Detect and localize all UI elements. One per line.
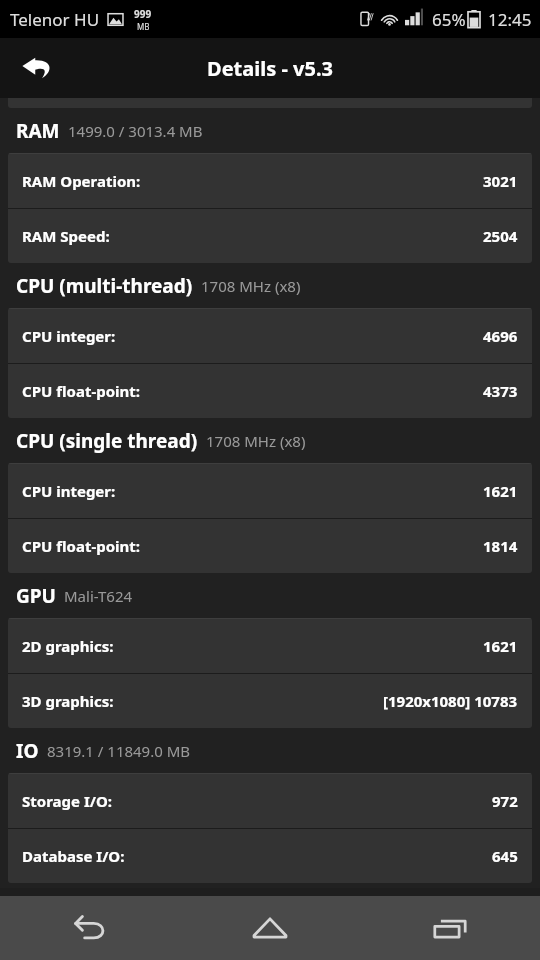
button[interactable]: Back <box>0 896 180 960</box>
staticText: Database I/O: <box>22 846 125 866</box>
staticText: CPU float-point: <box>22 536 141 556</box>
staticText: Mali-T624 <box>64 586 133 606</box>
staticText: Storage I/O: <box>22 791 113 811</box>
button[interactable]: CPU integer: <box>8 464 532 518</box>
button[interactable]: Database I/O: <box>8 829 532 883</box>
button[interactable]: CPU float-point: <box>8 364 532 418</box>
button[interactable]: RAM Speed: <box>8 209 532 263</box>
button[interactable]: 3D graphics: <box>8 674 532 728</box>
staticText: RAM <box>16 118 60 144</box>
staticText: [1920x1080] 10783 <box>383 691 518 711</box>
staticText: 2D graphics: <box>22 636 114 656</box>
button[interactable]: RAM Operation: <box>8 154 532 208</box>
staticText: 1814 <box>483 536 518 556</box>
button[interactable]: CPU integer: <box>8 309 532 363</box>
button[interactable]: 2D graphics: <box>8 619 532 673</box>
staticText: Details - v5.3 <box>207 55 333 82</box>
staticText: CPU (single thread) <box>16 428 198 454</box>
staticText: 1708 MHz (x8) <box>201 276 301 296</box>
staticText: 12:45 <box>488 8 532 31</box>
staticText: 999 <box>134 7 152 21</box>
staticText: IO <box>16 738 39 764</box>
staticText: CPU integer: <box>22 481 116 501</box>
staticText: 1499.0 / 3013.4 MB <box>68 121 203 141</box>
staticText: MB <box>137 21 150 32</box>
staticText: 1621 <box>483 636 518 656</box>
button[interactable]: Recent apps <box>360 896 540 960</box>
staticText: CPU integer: <box>22 326 116 346</box>
staticText: 3D graphics: <box>22 691 114 711</box>
staticText: GPU <box>16 583 56 609</box>
staticText: Telenor HU <box>10 8 100 31</box>
staticText: RAM Operation: <box>22 171 141 191</box>
button[interactable]: Home <box>180 896 360 960</box>
staticText: 645 <box>492 846 518 866</box>
staticText: RAM Speed: <box>22 226 110 246</box>
staticText: 972 <box>492 791 518 811</box>
button[interactable]: CPU float-point: <box>8 519 532 573</box>
button[interactable]: Storage I/O: <box>8 774 532 828</box>
staticText: 4696 <box>483 326 518 346</box>
staticText: 8319.1 / 11849.0 MB <box>47 741 191 761</box>
staticText: CPU float-point: <box>22 381 141 401</box>
staticText: 1708 MHz (x8) <box>206 431 306 451</box>
staticText: 3021 <box>483 171 518 191</box>
button[interactable]: Back <box>10 40 66 96</box>
staticText: 1621 <box>483 481 518 501</box>
staticText: 2504 <box>483 226 518 246</box>
staticText: 65% <box>432 8 466 31</box>
staticText: 4373 <box>483 381 518 401</box>
staticText: CPU (multi-thread) <box>16 273 193 299</box>
